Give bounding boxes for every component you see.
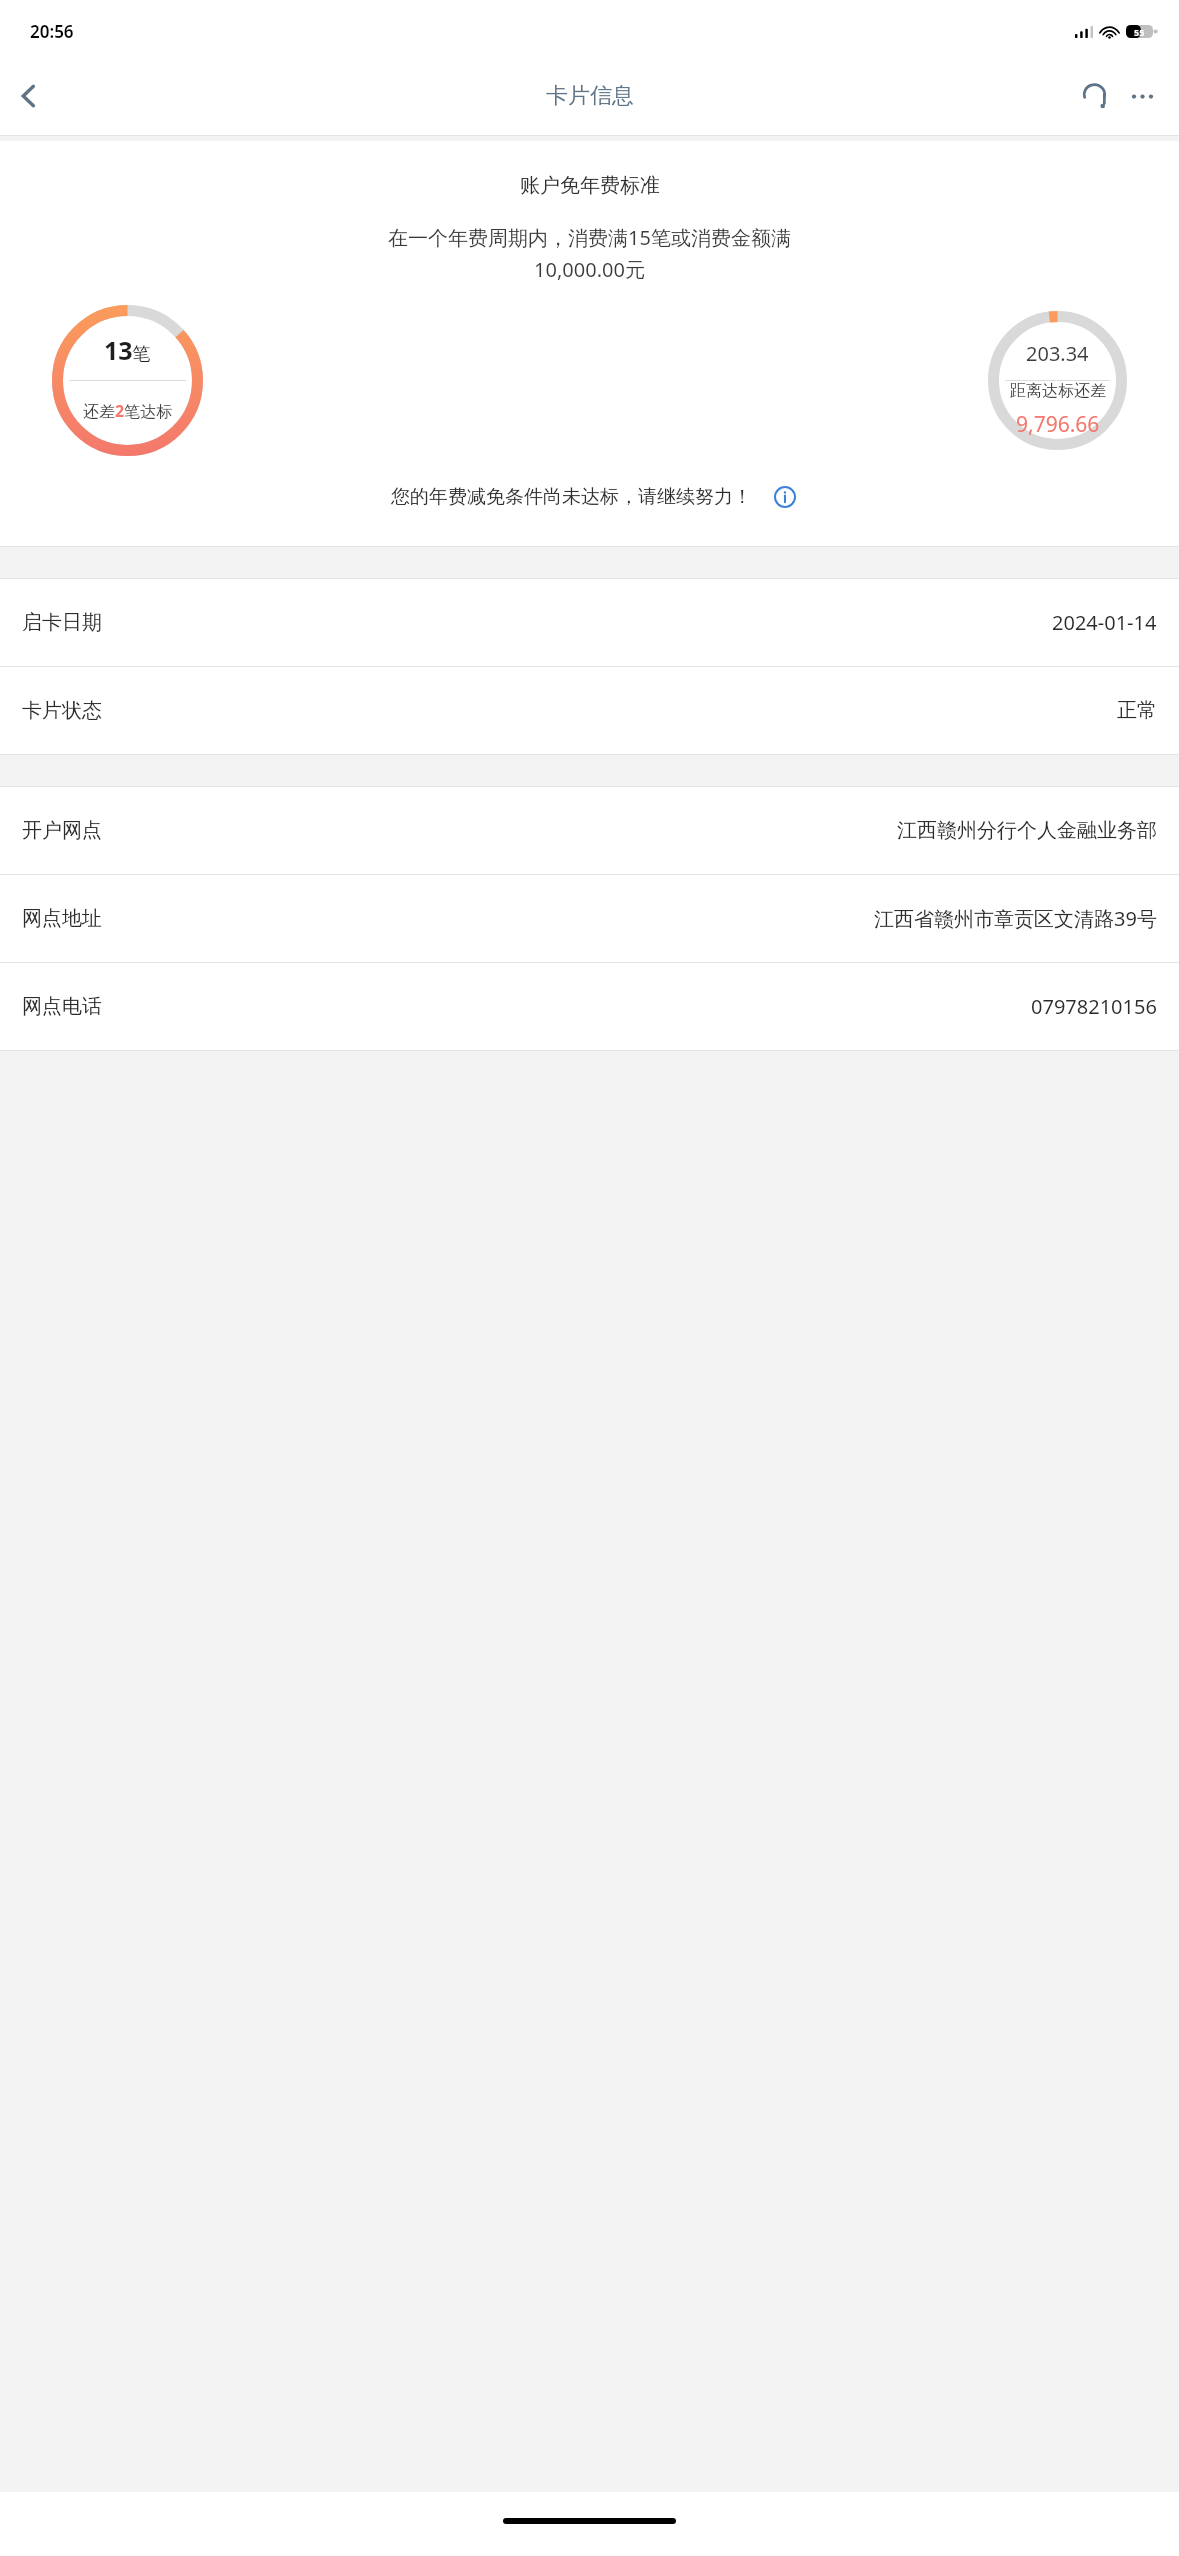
staticText: 20:56	[30, 20, 74, 43]
button[interactable]: Customer service	[1069, 71, 1119, 121]
staticText: 07978210156	[1031, 993, 1157, 1020]
button[interactable]: 网点地址	[0, 875, 1179, 962]
staticText: 13笔	[104, 333, 151, 367]
staticText: 卡片状态	[22, 698, 102, 723]
staticText: 正常	[1117, 698, 1157, 723]
button[interactable]: 卡片状态	[0, 667, 1179, 754]
staticText: 网点地址	[22, 906, 102, 931]
button[interactable]: More information	[768, 480, 802, 514]
button[interactable]: More options	[1119, 73, 1165, 119]
staticText: 203.34	[1026, 340, 1089, 367]
staticText: 9,796.66	[1016, 410, 1100, 435]
staticText: 55	[1134, 26, 1145, 38]
staticText: 网点电话	[22, 994, 102, 1019]
staticText: 在一个年费周期内，消费满15笔或消费金额满 10,000.00元	[40, 224, 1139, 283]
staticText: 账户免年费标准	[520, 173, 660, 198]
staticText: 江西省赣州市章贡区文清路39号	[874, 905, 1157, 932]
button[interactable]: 启卡日期	[0, 579, 1179, 666]
staticText: 卡片信息	[546, 82, 634, 110]
staticText: 2024-01-14	[1052, 609, 1157, 636]
staticText: 开户网点	[22, 818, 102, 843]
staticText: 还差2笔达标	[83, 400, 173, 422]
staticText: 江西赣州分行个人金融业务部	[897, 818, 1157, 843]
button[interactable]: Back	[0, 67, 58, 125]
staticText: 距离达标还差	[1010, 381, 1106, 401]
staticText: 您的年费减免条件尚未达标，请继续努力！	[391, 485, 752, 509]
button[interactable]: 开户网点	[0, 787, 1179, 874]
staticText: 启卡日期	[22, 610, 102, 635]
button[interactable]: 网点电话	[0, 963, 1179, 1050]
